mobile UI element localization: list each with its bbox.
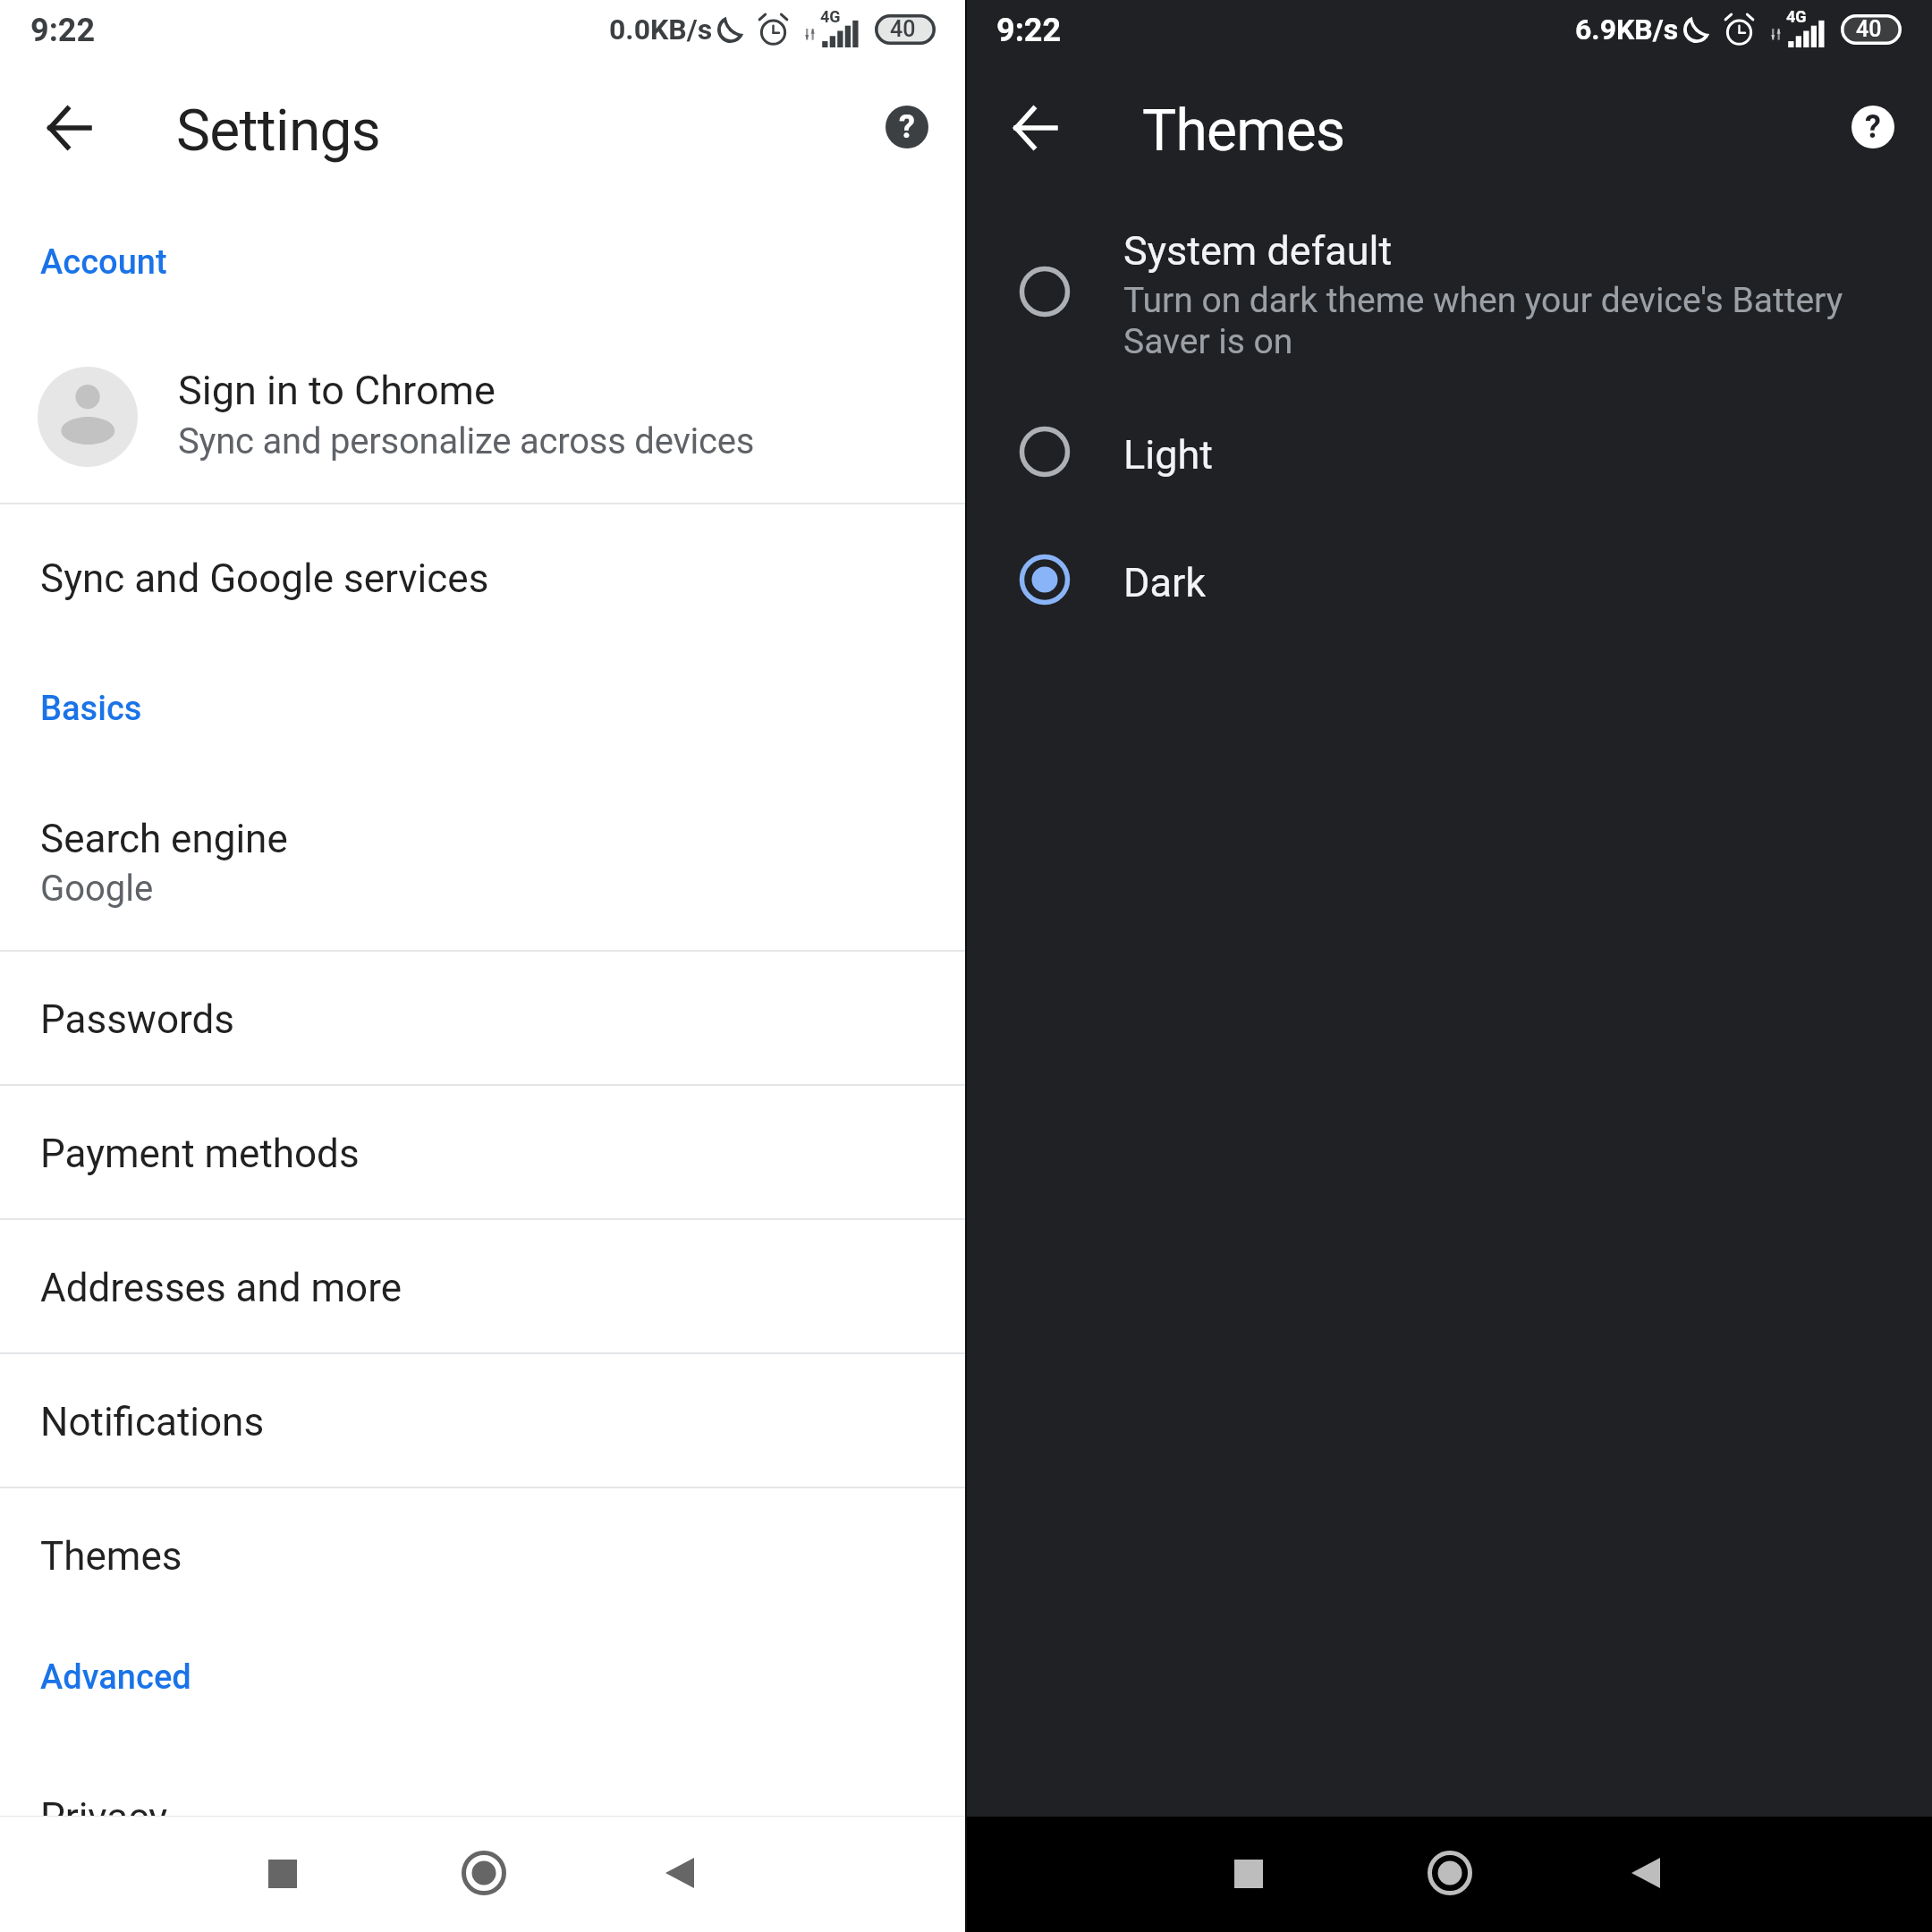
button[interactable]: Sync and Google services	[0, 504, 966, 674]
button[interactable]: Notifications	[0, 1352, 966, 1487]
staticText: Sign in to Chrome	[178, 367, 496, 414]
staticText: Sync and Google services	[40, 555, 489, 602]
button[interactable]: Privacy	[0, 1748, 966, 1882]
button[interactable]: Sign in to Chrome	[0, 331, 966, 503]
staticText: 40	[890, 16, 916, 42]
staticText: Addresses and more	[40, 1265, 402, 1311]
staticText: 9:22	[996, 11, 1062, 48]
staticText: Themes	[1142, 97, 1345, 165]
staticText: Basics	[40, 689, 142, 729]
button[interactable]: Payment methods	[0, 1084, 966, 1218]
staticText: System default	[1123, 227, 1393, 275]
staticText: Advanced	[40, 1657, 191, 1698]
staticText: Light	[1123, 431, 1213, 479]
staticText: Turn on dark theme when your device's Ba…	[1123, 279, 1843, 361]
staticText: Search engine	[40, 816, 288, 862]
staticText: Sync and personalize across devices	[178, 420, 755, 462]
button[interactable]: Addresses and more	[0, 1218, 966, 1352]
staticText: Notifications	[40, 1399, 265, 1445]
button[interactable]: Dark	[966, 521, 1932, 638]
staticText: Account	[40, 242, 167, 283]
button[interactable]: Themes	[0, 1487, 966, 1621]
staticText: Payment methods	[40, 1131, 360, 1177]
button[interactable]: Search engine	[0, 787, 966, 950]
button[interactable]: Home	[457, 1846, 511, 1900]
button[interactable]: Passwords	[0, 950, 966, 1084]
staticText: 4G	[1786, 7, 1807, 26]
staticText: 40	[1856, 16, 1882, 42]
button[interactable]: Help	[1851, 106, 1894, 148]
button[interactable]: System default	[966, 201, 1932, 391]
button[interactable]: Light	[966, 394, 1932, 510]
button[interactable]: Recents	[256, 1847, 309, 1901]
button[interactable]: Home	[1423, 1846, 1477, 1900]
button[interactable]: Back	[653, 1846, 707, 1900]
button[interactable]: Back	[1014, 107, 1055, 148]
staticText: 0.0KB/s	[609, 13, 713, 47]
staticText: Privacy	[40, 1794, 168, 1841]
staticText: 6.9KB/s	[1575, 13, 1679, 47]
staticText: ?	[899, 107, 915, 145]
staticText: 9:22	[30, 11, 96, 48]
staticText: Themes	[40, 1533, 182, 1580]
staticText: ?	[1865, 107, 1881, 145]
staticText: Settings	[176, 97, 381, 165]
button[interactable]: Back	[1619, 1846, 1673, 1900]
button[interactable]: Back	[48, 107, 89, 148]
staticText: 4G	[820, 7, 841, 26]
staticText: Passwords	[40, 996, 235, 1043]
button[interactable]: Help	[885, 106, 928, 148]
staticText: Dark	[1123, 559, 1207, 606]
button[interactable]: Recents	[1222, 1847, 1275, 1901]
staticText: Google	[40, 868, 154, 910]
